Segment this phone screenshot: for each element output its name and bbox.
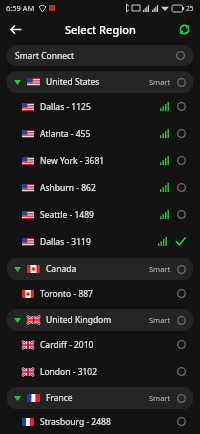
staticText: Smart — [149, 393, 171, 403]
staticText: Cardiff - 2010 — [40, 339, 94, 351]
staticText: Seattle - 1489 — [40, 209, 94, 221]
button[interactable]: Cardiff - 2010 — [0, 331, 200, 358]
staticText: Dallas - 3119 — [40, 236, 91, 248]
staticText: Ashburn - 862 — [40, 182, 96, 194]
staticText: Atlanta - 455 — [40, 128, 91, 140]
button[interactable]: Toronto - 887 — [0, 280, 200, 307]
button[interactable]: Canada — [7, 258, 193, 280]
staticText: New York - 3681 — [40, 155, 105, 167]
button[interactable]: Dallas - 1125 — [0, 93, 200, 120]
button[interactable]: Ashburn - 862 — [0, 174, 200, 201]
button[interactable]: Dallas - 3119 — [0, 228, 200, 255]
staticText: United States — [46, 76, 100, 88]
staticText: Select Region — [65, 22, 136, 37]
button[interactable]: London - 3102 — [0, 358, 200, 385]
staticText: Toronto - 887 — [40, 288, 93, 300]
button[interactable]: Seattle - 1489 — [0, 201, 200, 228]
staticText: United Kingdom — [46, 314, 112, 326]
button[interactable]: New York - 3681 — [0, 147, 200, 174]
button[interactable]: Refresh — [174, 19, 194, 39]
staticText: Smart Connect — [15, 50, 75, 62]
staticText: France — [46, 392, 73, 404]
staticText: Smart — [149, 315, 171, 325]
staticText: Canada — [46, 263, 77, 275]
staticText: 25 — [186, 4, 194, 13]
staticText: Strasbourg - 2488 — [40, 416, 111, 428]
staticText: Dallas - 1125 — [40, 101, 91, 113]
button[interactable]: Atlanta - 455 — [0, 120, 200, 147]
button[interactable]: Back — [4, 18, 26, 40]
staticText: Smart — [149, 264, 171, 274]
button[interactable]: Strasbourg - 2488 — [0, 409, 200, 434]
button[interactable]: Smart Connect — [7, 45, 193, 66]
staticText: London - 3102 — [40, 366, 98, 378]
button[interactable]: France — [7, 387, 193, 409]
button[interactable]: United Kingdom — [7, 309, 193, 331]
staticText: 6:59 AM — [6, 3, 35, 13]
button[interactable]: United States — [7, 71, 193, 93]
staticText: Smart — [149, 77, 171, 87]
